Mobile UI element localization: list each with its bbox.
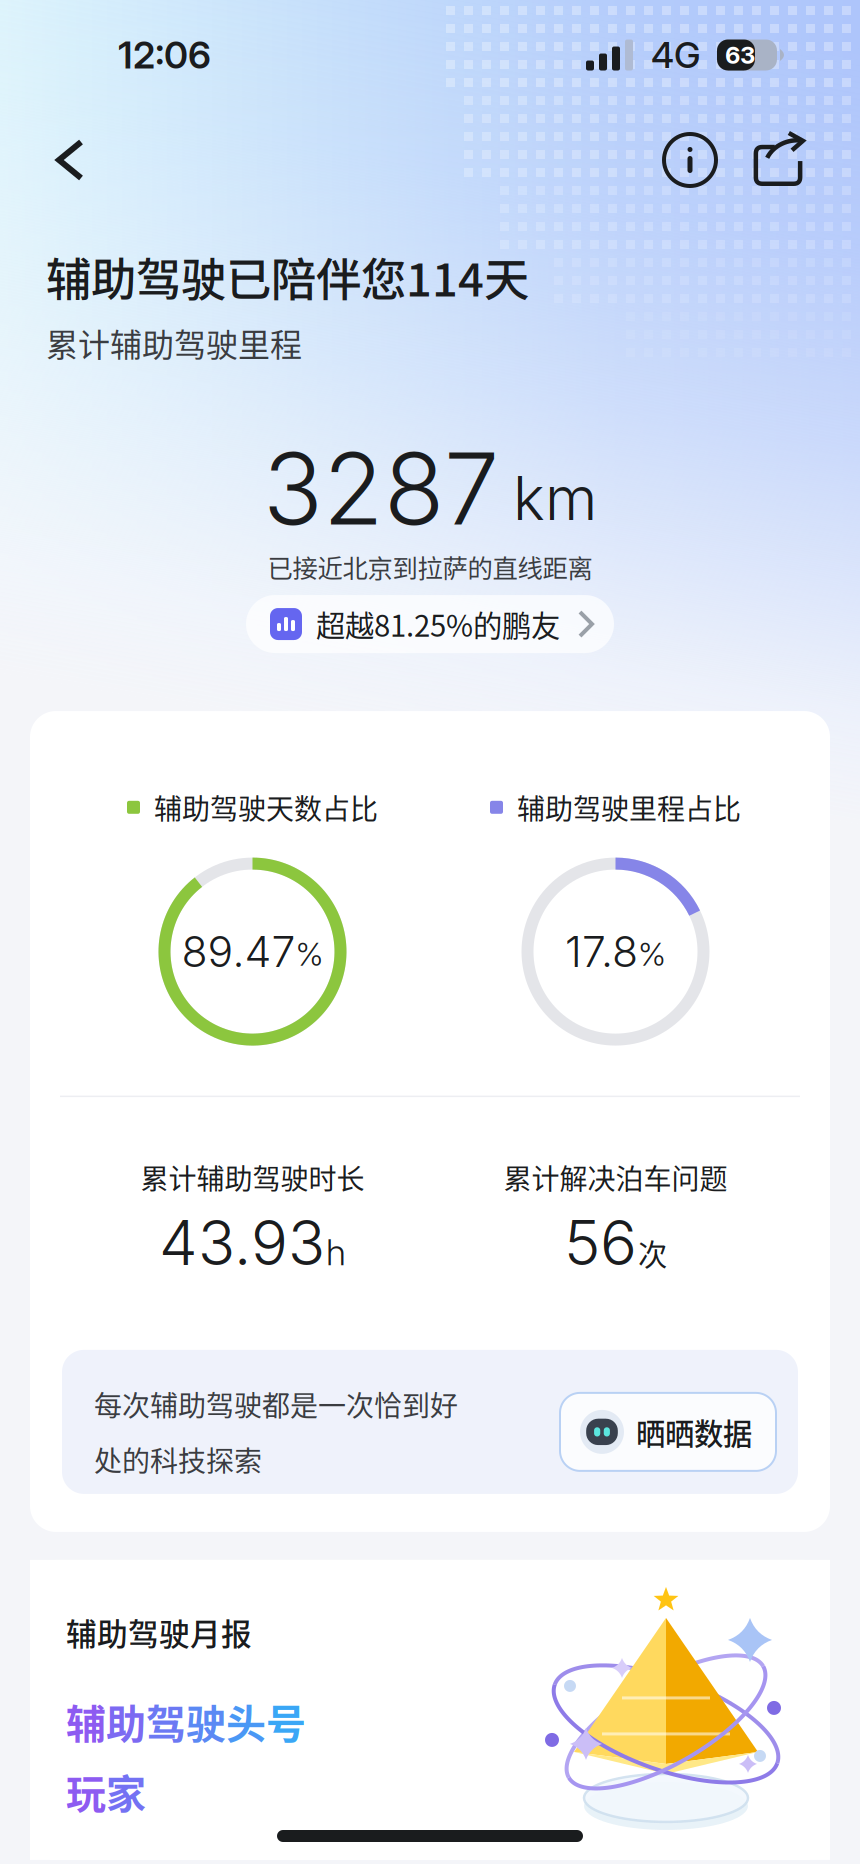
staticText: 助 (106, 1692, 146, 1750)
staticText: 号 (266, 1692, 306, 1750)
staticText: 63 (725, 40, 755, 69)
staticText: h (326, 1230, 346, 1274)
staticText: 次 (638, 1231, 667, 1274)
button[interactable]: 超越81.25%的鹏友 (246, 595, 614, 653)
staticText: 已接近北京到拉萨的直线距离 (267, 548, 592, 585)
button[interactable]: Back (30, 120, 110, 200)
staticText: 驾 (146, 1692, 186, 1750)
button[interactable]: 晒晒数据 (560, 1393, 776, 1471)
staticText: 12:06 (118, 32, 211, 78)
staticText: % (295, 935, 323, 973)
staticText: 累计辅助驾驶时长 (140, 1157, 364, 1198)
staticText: 3287 (263, 429, 499, 548)
staticText: % (638, 935, 666, 973)
staticText: 玩 (66, 1762, 106, 1820)
button[interactable]: Share (738, 120, 818, 200)
button[interactable]: Info (650, 120, 730, 200)
staticText: 辅助驾驶里程占比 (517, 787, 741, 827)
staticText: 辅助驾驶天数占比 (154, 787, 378, 827)
staticText: 89.47 (181, 926, 295, 977)
staticText: 处的科技探索 (94, 1439, 262, 1480)
staticText: 辅 (66, 1692, 106, 1750)
button[interactable]: 辅助驾驶月报 (30, 1560, 830, 1860)
staticText: 头 (226, 1692, 266, 1750)
staticText: 驶 (186, 1692, 226, 1750)
staticText: 56 (564, 1206, 637, 1280)
staticText: 每次辅助驾驶都是一次恰到好 (94, 1384, 458, 1424)
staticText: 4G (651, 33, 701, 77)
staticText: 辅助驾驶月报 (66, 1610, 252, 1654)
staticText: 辅助驾驶已陪伴您114天 (46, 244, 529, 310)
staticText: 43.93 (159, 1206, 325, 1280)
staticText: 家 (106, 1762, 146, 1820)
staticText: 累计解决泊车问题 (503, 1157, 727, 1198)
staticText: 累计辅助驾驶里程 (46, 320, 302, 366)
staticText: 17.8 (565, 926, 638, 977)
staticText: km (513, 462, 597, 534)
staticText: 超越81.25%的鹏友 (316, 603, 560, 645)
staticText: 晒晒数据 (636, 1411, 752, 1453)
